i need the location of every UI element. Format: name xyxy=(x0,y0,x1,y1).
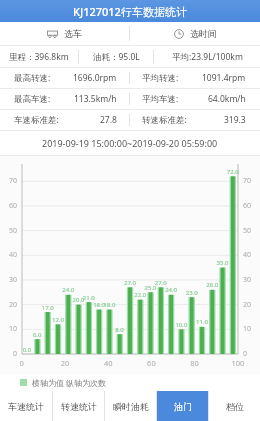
staticText: 27.8 xyxy=(100,114,117,126)
staticText: 64.0km/h xyxy=(208,93,246,105)
button[interactable]: 车速统计 xyxy=(0,391,52,421)
button[interactable]: 档位 xyxy=(209,391,260,421)
staticText: 油门 xyxy=(174,401,192,412)
staticText: 1091.4rpm xyxy=(202,72,246,84)
staticText: 平均转速: xyxy=(142,72,179,84)
button[interactable]: 瞬时油耗 xyxy=(105,391,156,421)
button[interactable]: 选车 xyxy=(0,22,129,45)
button[interactable]: 选时间 xyxy=(130,22,260,45)
staticText: 转速统计 xyxy=(61,401,97,412)
staticText: 转速标准差: xyxy=(142,114,187,126)
staticText: 选车 xyxy=(64,28,82,39)
staticText: 最高转速: xyxy=(14,72,51,84)
button[interactable]: 转速统计 xyxy=(53,391,104,421)
staticText: 平均车速: xyxy=(142,93,179,105)
staticText: 车速统计 xyxy=(8,401,44,412)
staticText: 选时间 xyxy=(190,28,217,39)
staticText: 1696.0rpm xyxy=(73,72,117,84)
staticText: 319.3 xyxy=(224,114,246,126)
staticText: 113.5km/h xyxy=(74,93,117,105)
staticText: 里程：396.8km xyxy=(9,51,69,63)
staticText: KJ127012行车数据统计 xyxy=(73,4,187,19)
staticText: 横轴为值 纵轴为次数 xyxy=(32,377,107,388)
staticText: 最高车速: xyxy=(14,93,51,105)
staticText: 车速标准差: xyxy=(14,114,59,126)
button[interactable]: 油门 xyxy=(157,391,208,421)
staticText: 2019-09-19 15:00:00~2019-09-20 05:59:00 xyxy=(42,137,218,149)
staticText: 瞬时油耗 xyxy=(113,401,149,412)
staticText: 档位 xyxy=(226,401,244,412)
staticText: 油耗：95.0L xyxy=(93,51,140,63)
staticText: 平均:23.9L/100km xyxy=(172,51,243,63)
